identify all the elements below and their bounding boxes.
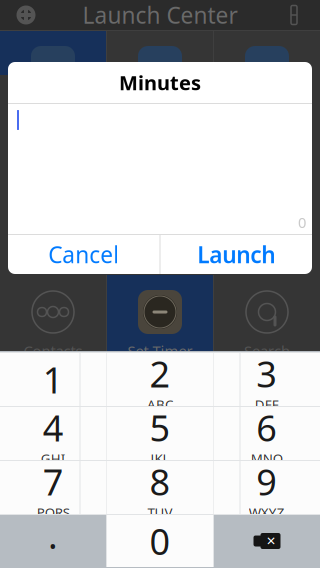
button[interactable]: 2 — [107, 353, 213, 406]
button[interactable]: 6 — [213, 407, 320, 460]
button[interactable] — [0, 31, 106, 75]
button[interactable]: 4 — [0, 407, 107, 460]
staticText: PQRS — [37, 504, 70, 521]
staticText: 6 — [256, 404, 277, 451]
staticText: TUV — [147, 504, 172, 521]
staticText: ABC — [147, 396, 173, 413]
staticText: Launch — [197, 239, 275, 269]
button[interactable]: 1 — [0, 353, 107, 406]
staticText: Launch Center — [82, 0, 237, 30]
button[interactable]: 7 — [0, 461, 107, 514]
staticText: 9 — [256, 458, 277, 505]
staticText: Cancel — [48, 239, 119, 269]
staticText: Search — [244, 341, 290, 360]
button[interactable]: Search — [214, 275, 320, 351]
staticText: Set Timer — [127, 341, 192, 360]
button[interactable]: 8 — [107, 461, 213, 514]
staticText: 7 — [43, 458, 64, 505]
staticText: 0 — [298, 212, 306, 232]
button[interactable]: 5 — [107, 407, 213, 460]
staticText: 4 — [43, 404, 64, 451]
button[interactable] — [214, 31, 320, 75]
staticText: 2 — [149, 350, 170, 397]
button[interactable]: Contacts — [0, 275, 106, 351]
staticText: MNO — [251, 450, 283, 467]
staticText: GHI — [41, 450, 66, 467]
staticText: Contacts — [23, 341, 82, 360]
staticText: 3 — [256, 350, 277, 397]
staticText: Minutes — [119, 69, 201, 96]
button[interactable]: 0 — [107, 515, 213, 567]
button[interactable]: Launch — [160, 235, 312, 274]
button[interactable]: Edit — [272, 0, 316, 30]
staticText: 8 — [149, 458, 170, 505]
button[interactable]: Cancel — [8, 235, 159, 274]
staticText: ✕ — [266, 534, 276, 548]
staticText: 5 — [149, 404, 170, 451]
staticText: WXYZ — [249, 504, 285, 521]
staticText: 0 — [149, 517, 170, 565]
staticText: JKL — [150, 450, 169, 467]
staticText: 1 — [43, 356, 64, 403]
staticText: . — [48, 511, 58, 559]
button[interactable]: 9 — [213, 461, 320, 514]
button[interactable]: . — [0, 515, 106, 567]
button[interactable]: Settings — [4, 0, 48, 30]
button[interactable] — [107, 31, 213, 75]
staticText: DEF — [255, 396, 279, 413]
button[interactable]: 3 — [213, 353, 320, 406]
button[interactable]: Delete — [214, 515, 320, 567]
button[interactable]: Set Timer — [107, 275, 213, 351]
